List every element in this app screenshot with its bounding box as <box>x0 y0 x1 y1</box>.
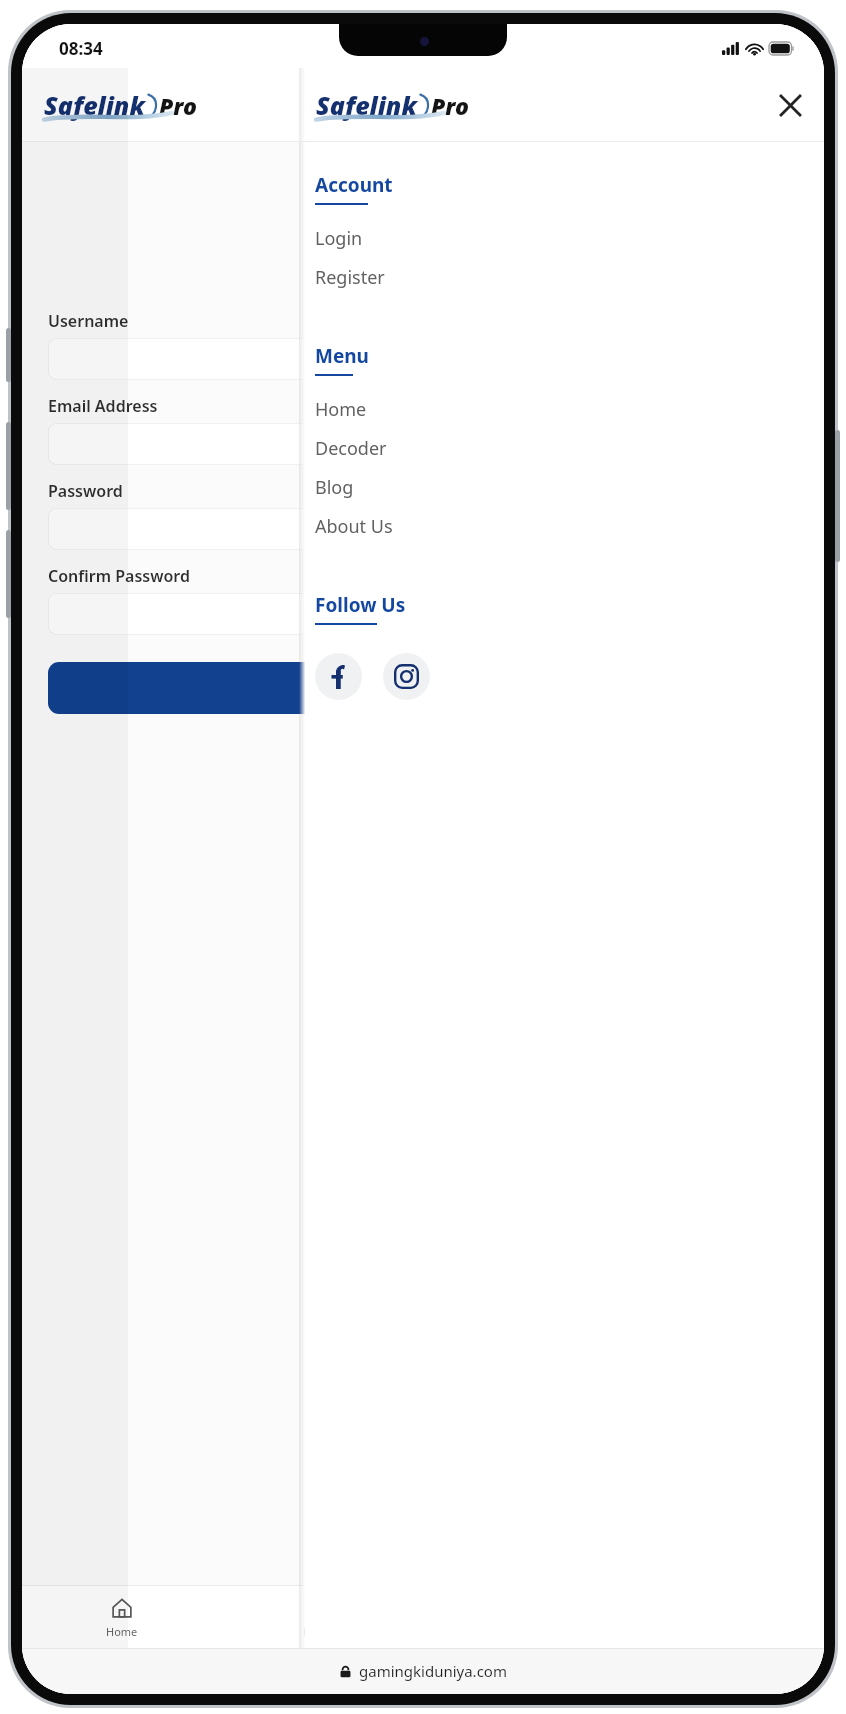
staticText: Decoder <box>315 436 387 461</box>
staticText: gamingkiduniya.com <box>359 1661 507 1681</box>
staticText: Pro <box>431 90 469 121</box>
staticText: Confirm Password <box>48 565 190 587</box>
staticText: Account <box>315 172 393 198</box>
staticText: Home <box>106 1624 138 1639</box>
staticText: Safelink <box>44 88 145 122</box>
button[interactable]: Close menu <box>770 85 810 125</box>
staticText: Follow Us <box>315 592 406 618</box>
staticText: Menu <box>315 343 369 369</box>
button[interactable]: Home <box>299 393 824 425</box>
staticText: Email Address <box>48 395 158 417</box>
staticText: Register <box>315 265 385 290</box>
staticText: Register <box>389 677 458 700</box>
button[interactable]: Home <box>22 1586 222 1648</box>
button[interactable]: About Us <box>299 510 824 542</box>
staticText: Pro <box>159 90 197 121</box>
button[interactable]: Login <box>299 222 824 254</box>
staticText: Home <box>315 397 367 422</box>
staticText: Username <box>48 310 129 332</box>
staticText: Create Account <box>48 190 798 231</box>
button[interactable]: Blog <box>299 471 824 503</box>
button[interactable]: Register <box>48 662 798 714</box>
staticText: Blog <box>315 475 354 500</box>
button[interactable]: Register <box>299 261 824 293</box>
staticText: Safelink <box>316 88 417 122</box>
staticText: Login <box>315 226 363 251</box>
button[interactable]: Instagram <box>383 653 430 700</box>
staticText: Password <box>48 480 123 502</box>
button[interactable]: Facebook <box>315 653 362 700</box>
staticText: About Us <box>315 514 393 539</box>
staticText: Join SafelinkPro today <box>48 257 798 280</box>
button[interactable]: Decoder <box>299 432 824 464</box>
staticText: 08:34 <box>59 37 103 60</box>
